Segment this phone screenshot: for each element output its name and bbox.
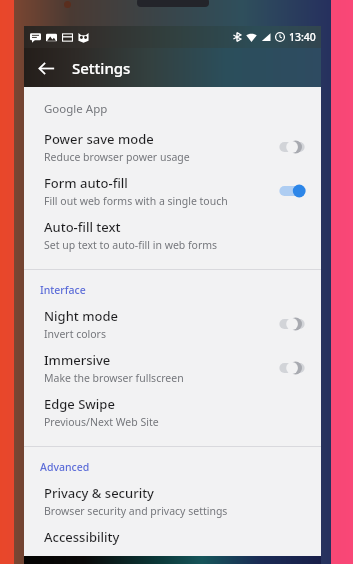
button[interactable]: Accessibility	[24, 523, 321, 556]
other: Toggle off	[277, 316, 307, 332]
button[interactable]: Form auto-fill	[24, 169, 321, 213]
button[interactable]: Auto-fill text	[24, 213, 321, 257]
staticText: Night mode	[44, 307, 118, 325]
staticText: Edge Swipe	[44, 395, 115, 413]
staticText: Browser security and privacy settings	[44, 504, 228, 518]
button[interactable]: Night mode	[24, 302, 321, 346]
staticText: Set up text to auto-fill in web forms	[44, 238, 218, 252]
staticText: Auto-fill text	[44, 218, 121, 236]
staticText: Make the browser fullscreen	[44, 371, 184, 385]
button[interactable]: Home	[158, 558, 188, 564]
other: Toggle off	[277, 139, 307, 155]
other: Toggle off	[277, 360, 307, 376]
staticText: Power save mode	[44, 130, 154, 148]
button[interactable]: Back	[31, 53, 61, 83]
staticText: Accessibility	[44, 528, 120, 546]
button[interactable]: Edge Swipe	[24, 390, 321, 434]
staticText: 13:40	[289, 30, 316, 44]
staticText: Interface	[40, 283, 86, 297]
staticText: Reduce browser power usage	[44, 150, 190, 164]
staticText: Form auto-fill	[44, 174, 128, 192]
other: Toggle on	[277, 183, 307, 199]
staticText: Privacy & security	[44, 484, 154, 502]
staticText: Advanced	[40, 460, 90, 474]
staticText: Invert colors	[44, 327, 106, 341]
button[interactable]: Power save mode	[24, 125, 321, 169]
staticText: Google App	[44, 101, 108, 117]
staticText: Previous/Next Web Site	[44, 415, 159, 429]
button[interactable]: Immersive	[24, 346, 321, 390]
staticText: Fill out web forms with a single touch	[44, 194, 228, 208]
staticText: Settings	[72, 58, 131, 78]
staticText: Immersive	[44, 351, 111, 369]
button[interactable]: Privacy & security	[24, 479, 321, 523]
